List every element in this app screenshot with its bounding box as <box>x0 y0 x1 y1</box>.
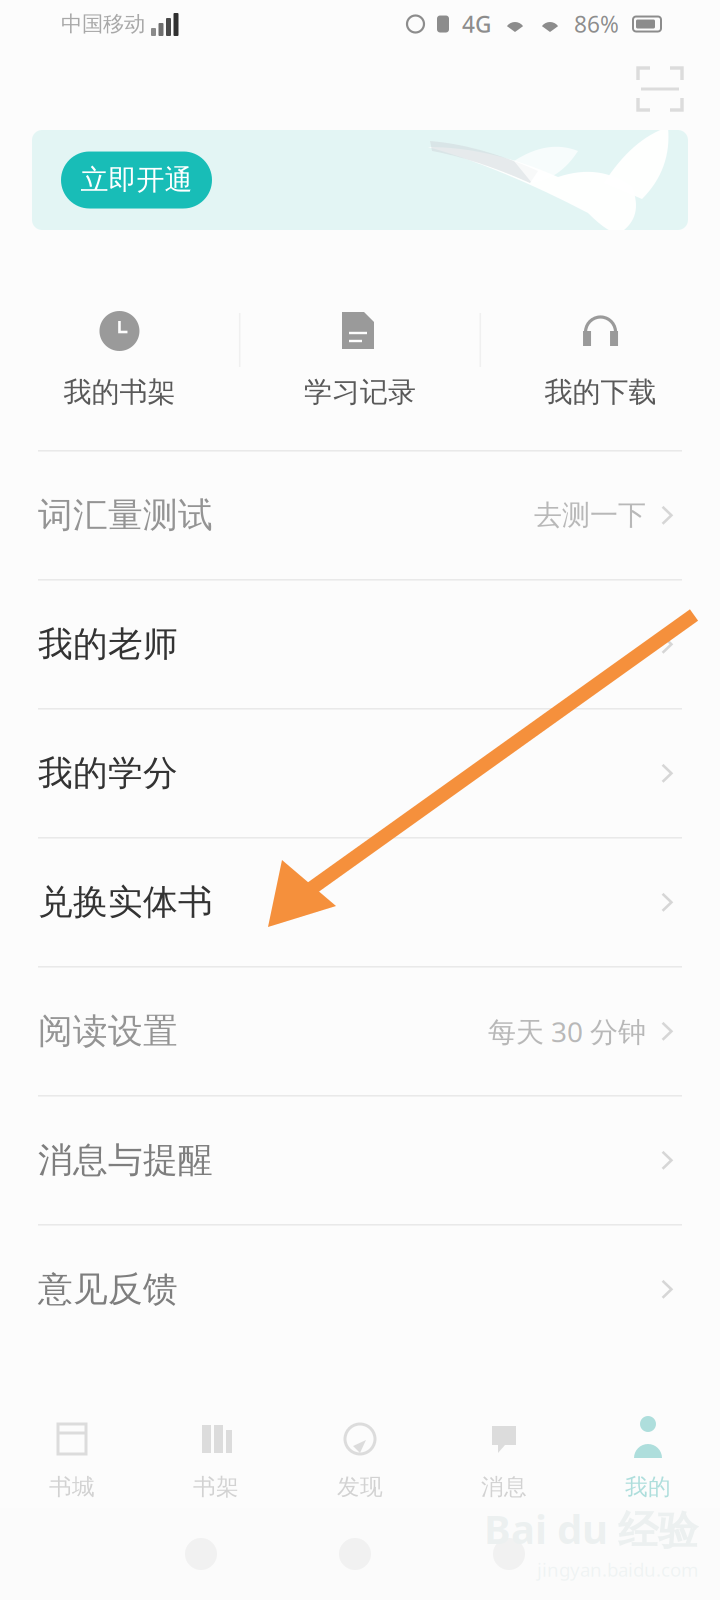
button[interactable]: 阅读设置 <box>0 968 720 1097</box>
button[interactable]: 书架 <box>144 1404 288 1508</box>
staticText: 意见反馈 <box>38 1268 178 1311</box>
staticText: Bai du 经验 <box>484 1502 698 1555</box>
button[interactable]: 发现 <box>288 1404 432 1508</box>
button[interactable]: 我的下载 <box>481 230 720 450</box>
staticText: 我的下载 <box>544 375 656 409</box>
staticText: 消息 <box>481 1473 527 1501</box>
staticText: 中国移动 <box>61 11 145 37</box>
staticText: 消息与提醒 <box>38 1139 213 1182</box>
staticText: 书架 <box>193 1473 239 1501</box>
button[interactable]: 学习记录 <box>240 230 479 450</box>
button[interactable]: 词汇量测试 <box>0 452 720 581</box>
staticText: 86% <box>574 9 619 39</box>
button[interactable]: 消息 <box>432 1404 576 1508</box>
staticText: 立即开通 <box>80 163 192 197</box>
staticText: 我的书架 <box>63 375 175 409</box>
staticText: 去测一下 <box>534 498 646 532</box>
button[interactable]: 设置 <box>634 63 720 115</box>
button[interactable]: 立即开通 <box>0 130 720 230</box>
button[interactable]: 兑换实体书 <box>0 839 720 968</box>
button[interactable]: 我的学分 <box>0 710 720 839</box>
staticText: 每天 30 分钟 <box>488 1013 646 1050</box>
button[interactable]: 我的老师 <box>0 581 720 710</box>
staticText: 词汇量测试 <box>38 494 213 537</box>
button[interactable]: 最近任务 <box>478 1523 540 1585</box>
staticText: 发现 <box>337 1473 383 1501</box>
staticText: 我的 <box>625 1473 671 1501</box>
button[interactable]: 返回 <box>170 1523 232 1585</box>
staticText: 兑换实体书 <box>38 881 213 924</box>
staticText: 书城 <box>49 1473 95 1501</box>
staticText: jingyan.baidu.com <box>537 1557 698 1582</box>
button[interactable]: 消息与提醒 <box>0 1097 720 1226</box>
staticText: 4G <box>462 9 491 39</box>
button[interactable]: 主页 <box>324 1523 386 1585</box>
button[interactable]: 我的 <box>576 1404 720 1508</box>
staticText: 我的学分 <box>38 752 178 795</box>
staticText: 学习记录 <box>304 375 416 409</box>
staticText: 阅读设置 <box>38 1010 178 1053</box>
staticText: 我的老师 <box>38 623 178 666</box>
button[interactable]: 书城 <box>0 1404 144 1508</box>
button[interactable]: 我的书架 <box>0 230 239 450</box>
button[interactable]: 意见反馈 <box>0 1226 720 1355</box>
